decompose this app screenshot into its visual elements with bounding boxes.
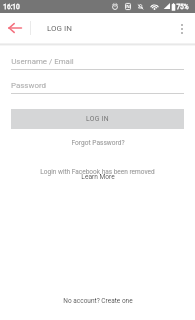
button[interactable]: Login with Facebook has been removed <box>0 168 195 176</box>
staticText: Password <box>11 81 46 90</box>
button[interactable]: Learn More <box>0 173 195 181</box>
button[interactable]: Forgot Password? <box>0 139 195 147</box>
button[interactable]: No account? Create one <box>0 297 195 305</box>
staticText: LOG IN <box>47 24 72 33</box>
staticText: Forgot Password? <box>71 139 125 147</box>
staticText: LOG IN <box>86 115 109 123</box>
staticText: Learn More <box>81 173 115 181</box>
staticText: 75% <box>176 3 189 11</box>
staticText: No account? Create one <box>63 297 133 305</box>
button[interactable]: Back <box>0 13 29 44</box>
button[interactable]: LOG IN <box>11 109 184 129</box>
staticText: 16:10 <box>3 3 20 11</box>
staticText: Username / Email <box>11 57 74 66</box>
button[interactable]: More options <box>169 16 195 42</box>
staticText: Login with Facebook has been removed <box>40 168 155 176</box>
